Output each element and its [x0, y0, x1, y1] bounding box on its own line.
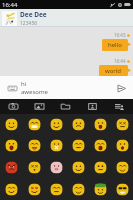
- staticText: hello: [108, 41, 122, 49]
- staticText: world: [105, 67, 122, 74]
- button[interactable]: Emoji 3: [67, 114, 89, 135]
- button[interactable]: Emoji 20: [45, 178, 67, 200]
- button[interactable]: Emoji 4: [89, 114, 111, 135]
- button[interactable]: Emoji 22: [89, 178, 111, 200]
- button[interactable]: world: [99, 65, 128, 76]
- button[interactable]: Emoji 15: [67, 156, 89, 178]
- button[interactable]: Emoji 0: [0, 114, 23, 135]
- button[interactable]: Dee Dee: [0, 9, 133, 27]
- button[interactable]: Emoji 11: [111, 135, 133, 156]
- button[interactable]: Emoji 1: [23, 114, 45, 135]
- button[interactable]: Gallery: [26, 99, 52, 114]
- staticText: 123456: [20, 20, 38, 27]
- button[interactable]: Emoji 18: [0, 178, 23, 200]
- button[interactable]: Send: [111, 78, 131, 98]
- staticText: 16:44: [2, 1, 18, 9]
- button[interactable]: Emoji 8: [45, 135, 67, 156]
- staticText: 16:44: [114, 58, 126, 64]
- button[interactable]: Lists: [106, 99, 133, 114]
- button[interactable]: Emoji 12: [0, 156, 23, 178]
- button[interactable]: Contact: [79, 99, 106, 114]
- button[interactable]: Emoji 10: [89, 135, 111, 156]
- button[interactable]: Keyboard: [5, 81, 19, 95]
- button[interactable]: Emoji 16: [89, 156, 111, 178]
- button[interactable]: Emoji 14: [45, 156, 67, 178]
- staticText: Dee Dee: [20, 10, 47, 19]
- button[interactable]: Emoji 17: [111, 156, 133, 178]
- button[interactable]: Files: [52, 99, 79, 114]
- button[interactable]: Emoji 9: [67, 135, 89, 156]
- button[interactable]: Emoji 13: [23, 156, 45, 178]
- button[interactable]: Emoji 2: [45, 114, 67, 135]
- button[interactable]: Emoji 19: [23, 178, 45, 200]
- button[interactable]: Camera: [0, 99, 26, 114]
- button[interactable]: Emoji 23: [111, 178, 133, 200]
- staticText: 16:43: [114, 32, 126, 38]
- staticText: hi: [21, 80, 27, 88]
- button[interactable]: Emoji 6: [0, 135, 23, 156]
- button[interactable]: Emoji 7: [23, 135, 45, 156]
- button[interactable]: hello: [102, 39, 128, 51]
- staticText: awesome: [21, 88, 48, 96]
- button[interactable]: Emoji 5: [111, 114, 133, 135]
- button[interactable]: Emoji 21: [67, 178, 89, 200]
